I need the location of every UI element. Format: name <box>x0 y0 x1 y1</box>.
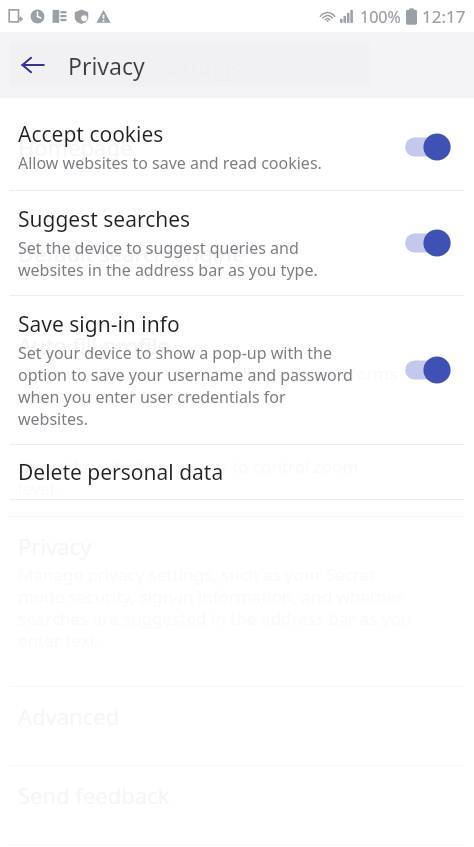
staticText: Override website requests to control zoo… <box>18 455 359 500</box>
button[interactable]: Toggle setting <box>404 130 460 164</box>
button[interactable]: Toggle setting <box>404 353 460 387</box>
staticText: Set your device to show a pop-up with th… <box>18 342 353 430</box>
staticText: Send feedback <box>18 780 170 810</box>
button[interactable]: Save sign-in info <box>0 296 474 444</box>
staticText: Advanced <box>18 701 120 731</box>
staticText: Set your device to save for filling out … <box>18 362 398 407</box>
button[interactable]: Delete personal data <box>0 445 474 499</box>
button[interactable]: Accept cookies <box>0 106 474 190</box>
staticText: Privacy <box>18 531 92 561</box>
staticText: Save sign-in info <box>18 310 180 339</box>
staticText: 12:17 <box>422 5 466 28</box>
button[interactable]: Back <box>12 44 54 86</box>
staticText: Default search engine <box>18 238 245 268</box>
staticText: Allow websites to save and read cookies. <box>18 152 322 174</box>
button[interactable]: Toggle setting <box>404 226 460 260</box>
button[interactable]: Suggest searches <box>0 191 474 295</box>
staticText: Delete personal data <box>18 458 224 487</box>
staticText: Auto fill profile <box>18 330 170 360</box>
staticText: Privacy <box>68 50 145 81</box>
staticText: Suggest searches <box>18 205 191 234</box>
staticText: Homepage <box>18 132 133 162</box>
staticText: 100% <box>360 6 401 28</box>
staticText: Accept cookies <box>18 120 164 149</box>
staticText: Set the device to suggest queries and we… <box>18 237 318 281</box>
